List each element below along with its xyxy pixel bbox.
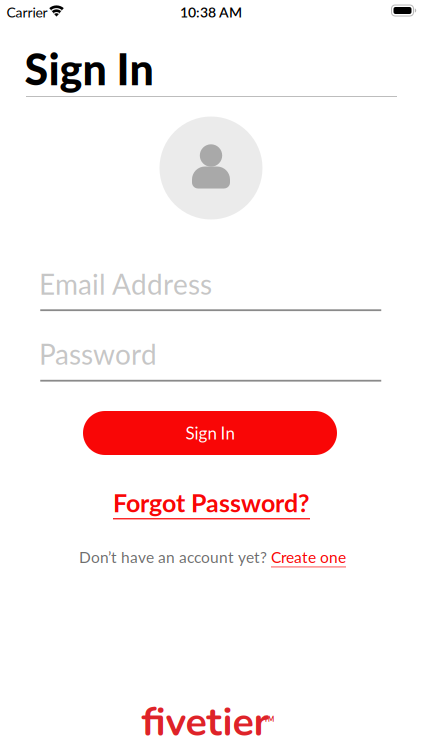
button[interactable]: Sign In [83, 411, 337, 455]
staticText: Forgot Password? [113, 488, 310, 518]
staticText: Sign In [24, 43, 153, 94]
staticText: Email Address [39, 267, 212, 301]
button[interactable]: Forgot Password? [113, 488, 310, 518]
button[interactable]: Create one [271, 548, 346, 566]
staticText: TM [264, 715, 274, 723]
staticText: Don’t have an account yet? [79, 548, 267, 566]
staticText: Create one [271, 548, 346, 566]
staticText: fivetier [141, 696, 268, 749]
staticText: Carrier [6, 4, 47, 20]
staticText: 10:38 AM [180, 4, 242, 20]
staticText: Password [39, 337, 157, 371]
staticText: Sign In [185, 423, 234, 443]
